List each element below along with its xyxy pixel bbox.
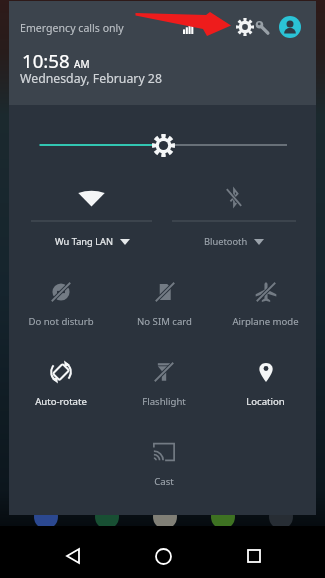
button[interactable]: Airplane mode xyxy=(214,264,316,332)
button[interactable]: Auto-rotate xyxy=(10,344,112,412)
staticText: Auto-rotate xyxy=(35,395,87,408)
staticText: Bluetooth xyxy=(204,235,248,248)
button[interactable]: Settings xyxy=(236,18,254,36)
staticText: Cast xyxy=(154,475,174,488)
staticText: Location xyxy=(246,395,285,408)
staticText: Airplane mode xyxy=(232,315,299,328)
staticText: 10:58 xyxy=(22,48,70,73)
staticText: AM xyxy=(74,57,90,71)
button[interactable]: Back xyxy=(42,534,103,578)
staticText: Flashlight xyxy=(142,395,186,408)
button[interactable] xyxy=(160,176,308,252)
button[interactable]: Recent apps xyxy=(223,534,284,578)
staticText: Wu Tang LAN xyxy=(55,235,114,248)
button[interactable]: Do not disturb xyxy=(10,264,112,332)
staticText: Emergency calls only xyxy=(20,21,124,35)
button[interactable]: Home xyxy=(133,534,194,578)
button[interactable] xyxy=(19,176,164,252)
button[interactable]: Brightness xyxy=(152,134,175,157)
button[interactable]: User account xyxy=(279,16,301,38)
staticText: No SIM card xyxy=(137,315,192,328)
button[interactable]: Cast xyxy=(113,424,215,492)
button[interactable]: Flashlight xyxy=(113,344,215,412)
staticText: Do not disturb xyxy=(28,315,94,328)
button[interactable]: Signal strength xyxy=(183,23,194,34)
button[interactable]: Location xyxy=(214,344,316,412)
button[interactable]: No SIM card xyxy=(113,264,215,332)
staticText: Wednesday, February 28 xyxy=(20,70,162,87)
